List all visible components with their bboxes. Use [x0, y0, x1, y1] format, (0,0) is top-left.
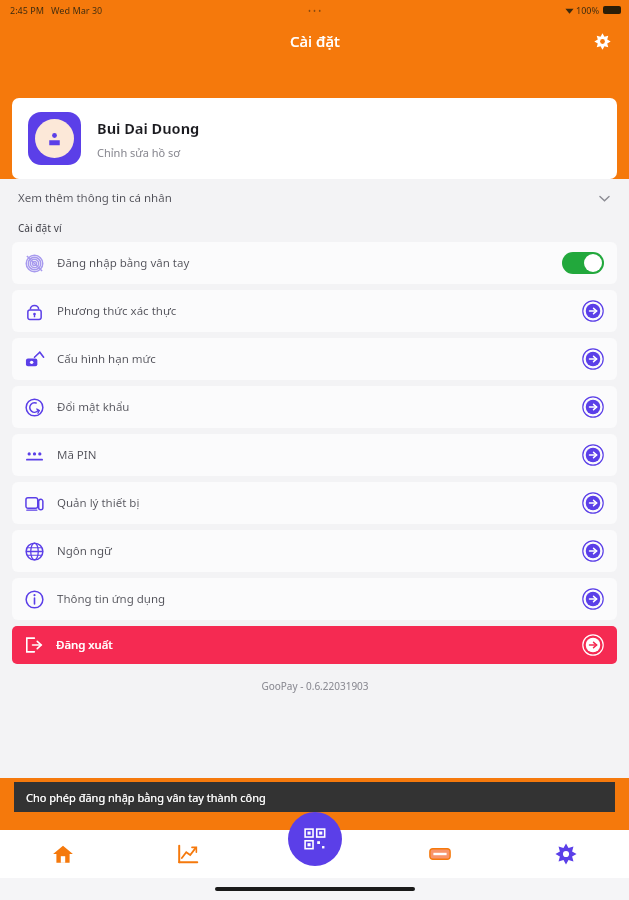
- button[interactable]: Đổi mật khẩu: [12, 386, 617, 428]
- staticText: Đăng nhập bằng vân tay: [57, 255, 190, 271]
- button[interactable]: Open: [582, 444, 604, 466]
- button[interactable]: Open: [582, 588, 604, 610]
- button[interactable]: Open: [582, 492, 604, 514]
- button[interactable]: Open: [582, 540, 604, 562]
- staticText: Ngôn ngữ: [57, 543, 112, 559]
- button[interactable]: Settings: [585, 24, 619, 58]
- staticText: Cho phép đăng nhập bằng vân tay thành cô…: [26, 790, 266, 805]
- staticText: Bui Dai Duong: [97, 118, 200, 138]
- staticText: Mã PIN: [57, 447, 97, 463]
- button[interactable]: Đăng xuất: [12, 626, 617, 664]
- staticText: 2:45 PM Wed Mar 30: [10, 4, 103, 16]
- button[interactable]: Settings: [503, 830, 629, 878]
- staticText: Chỉnh sửa hồ sơ: [97, 145, 181, 160]
- button[interactable]: Fingerprint login toggle: [562, 252, 604, 274]
- button[interactable]: Cấu hình hạn mức: [12, 338, 617, 380]
- button[interactable]: Cards: [377, 830, 503, 878]
- button[interactable]: Open: [582, 634, 604, 656]
- staticText: Cài đặt: [290, 31, 340, 51]
- button[interactable]: Phương thức xác thực: [12, 290, 617, 332]
- button[interactable]: Open: [582, 396, 604, 418]
- staticText: Quản lý thiết bị: [57, 495, 140, 511]
- staticText: Thông tin ứng dụng: [57, 591, 166, 607]
- button[interactable]: Statistics: [125, 830, 251, 878]
- staticText: 100%: [576, 4, 600, 16]
- button[interactable]: Home: [0, 830, 125, 878]
- staticText: Đổi mật khẩu: [57, 399, 130, 415]
- staticText: Xem thêm thông tin cá nhân: [18, 190, 172, 206]
- staticText: • • •: [308, 5, 322, 16]
- button[interactable]: Mã PIN: [12, 434, 617, 476]
- staticText: GooPay - 0.6.22031903: [261, 679, 369, 693]
- button[interactable]: Open: [582, 348, 604, 370]
- staticText: Đăng xuất: [56, 637, 113, 653]
- staticText: Phương thức xác thực: [57, 303, 177, 319]
- staticText: Cài đặt ví: [18, 221, 62, 235]
- button[interactable]: Đăng nhập bằng vân tay: [12, 242, 617, 284]
- button[interactable]: Thông tin ứng dụng: [12, 578, 617, 620]
- button[interactable]: Scan QR: [288, 812, 342, 866]
- button[interactable]: Xem thêm thông tin cá nhân: [0, 179, 629, 217]
- button[interactable]: Open: [582, 300, 604, 322]
- button[interactable]: Bui Dai Duong: [12, 98, 617, 179]
- button[interactable]: Ngôn ngữ: [12, 530, 617, 572]
- staticText: Cấu hình hạn mức: [57, 351, 156, 367]
- button[interactable]: Quản lý thiết bị: [12, 482, 617, 524]
